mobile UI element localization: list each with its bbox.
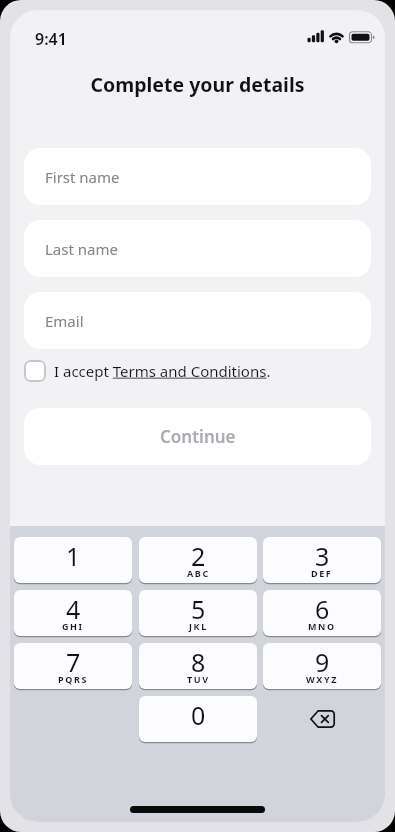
button[interactable]: 7 [14,643,132,689]
staticText: GHI [62,620,84,632]
staticText: ABC [187,567,210,579]
staticText: 7 [66,645,81,679]
staticText: 8 [191,645,206,679]
button[interactable]: 0 [139,696,257,742]
staticText: 9:41 [35,28,67,50]
staticText: 3 [315,539,330,573]
button[interactable]: 2 [139,537,257,583]
staticText: PQRS [58,673,88,685]
staticText: Last name [45,239,118,259]
staticText: 0 [191,698,206,732]
staticText: Email [45,311,84,331]
button[interactable]: Continue [24,408,371,465]
staticText: I accept Terms and Conditions. [54,361,271,381]
button[interactable]: 9 [263,643,381,689]
staticText: Complete your details [10,71,385,98]
staticText: WXYZ [306,673,338,685]
staticText: 6 [315,592,330,626]
staticText: 4 [66,592,81,626]
staticText: MNO [308,620,336,632]
button[interactable] [263,696,381,742]
button[interactable]: First name [24,148,371,205]
staticText: 5 [191,592,206,626]
staticText: JKL [189,620,208,632]
button[interactable]: Last name [24,220,371,277]
button[interactable]: 1 [14,537,132,583]
staticText: Continue [160,425,236,448]
button[interactable]: I accept Terms and Conditions. [24,360,271,382]
button[interactable]: 5 [139,590,257,636]
staticText: 9 [315,645,330,679]
staticText: First name [45,167,120,187]
button[interactable]: 4 [14,590,132,636]
staticText: 1 [66,539,81,573]
staticText: DEF [311,567,333,579]
button[interactable]: 6 [263,590,381,636]
button[interactable]: Email [24,292,371,349]
button[interactable]: 3 [263,537,381,583]
staticText: 2 [191,539,206,573]
staticText: TUV [187,673,210,685]
button[interactable]: 8 [139,643,257,689]
